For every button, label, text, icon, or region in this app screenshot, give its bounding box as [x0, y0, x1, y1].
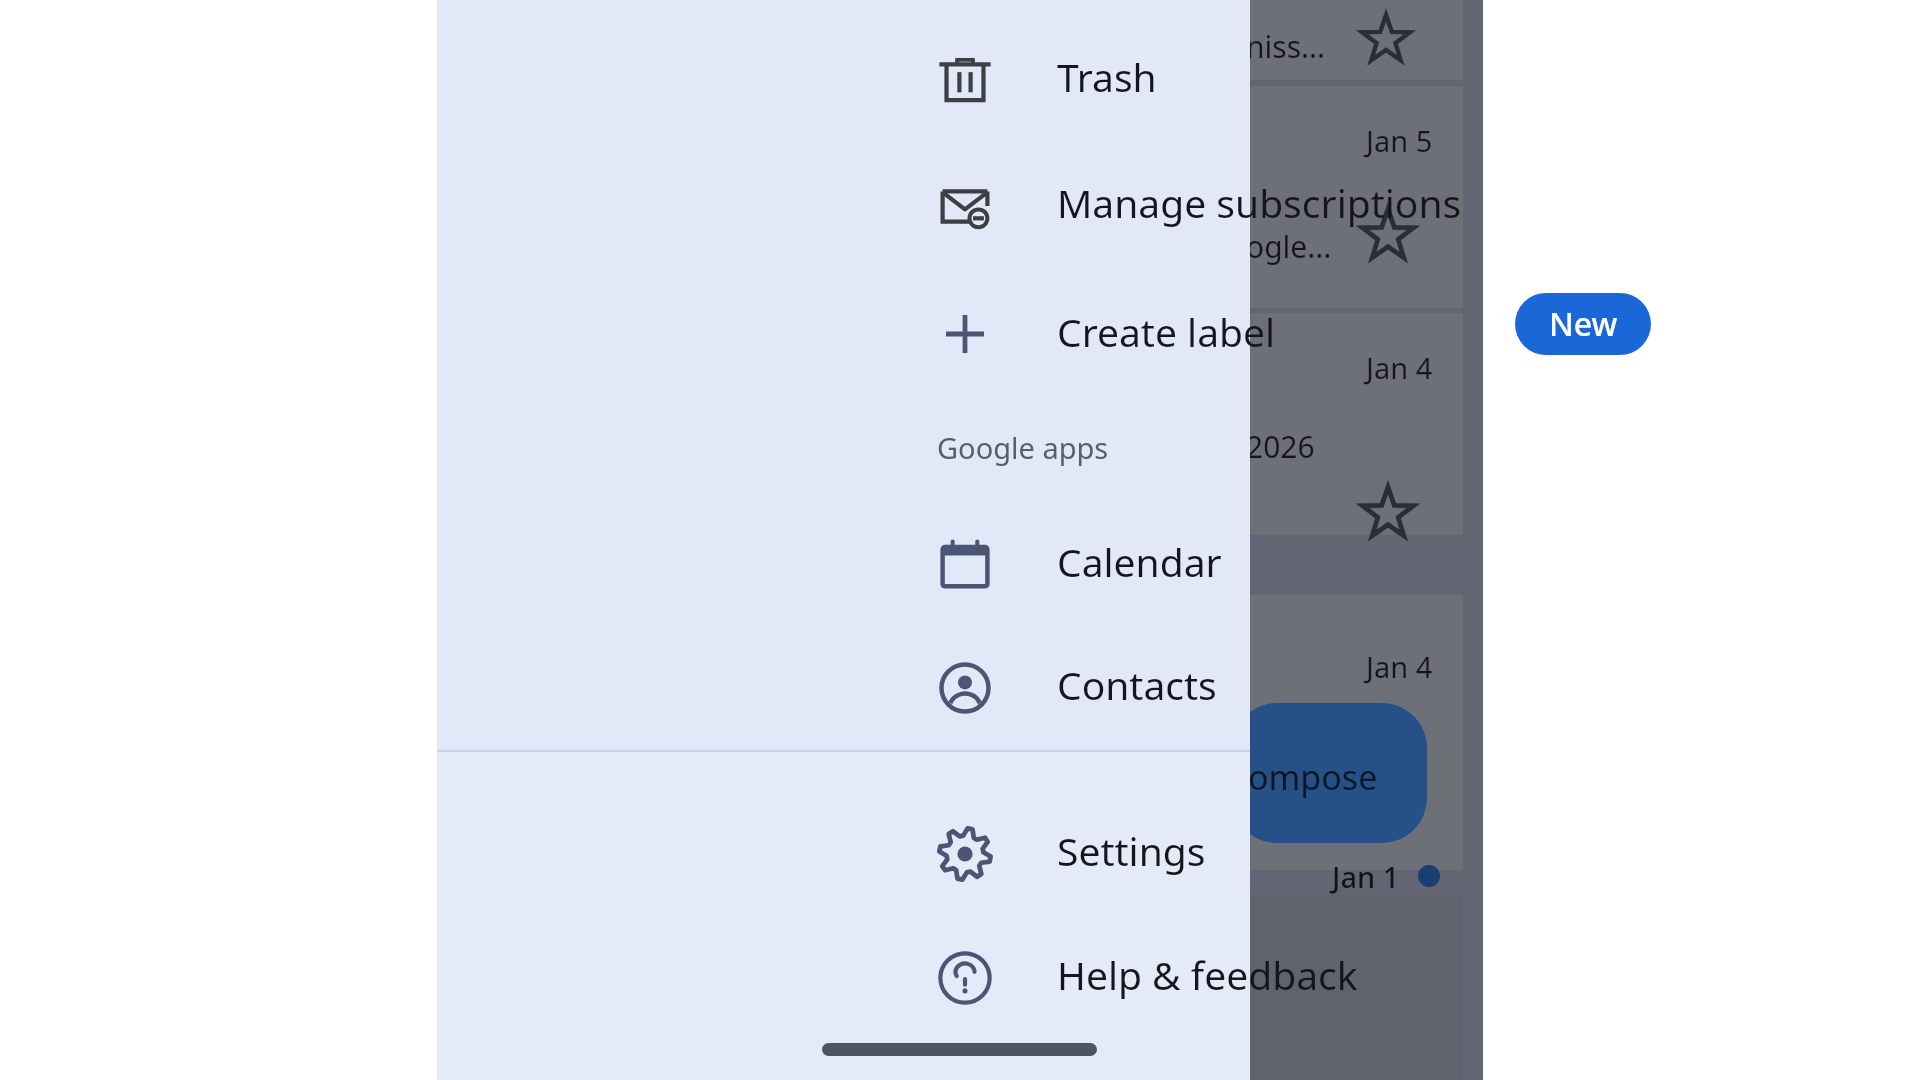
other: Contacts	[937, 660, 993, 716]
button[interactable]: ompose	[1232, 703, 1427, 843]
staticText: Jan 5	[1366, 121, 1433, 160]
other: Calendar	[937, 537, 993, 593]
staticText: Create label	[1057, 305, 1276, 358]
staticText: Manage subscriptions	[1057, 176, 1462, 229]
button[interactable]: Settings	[437, 804, 1250, 900]
other: Create label	[937, 306, 993, 362]
button[interactable]: Manage subscriptions	[437, 156, 1250, 252]
staticText: niss...	[1246, 26, 1326, 67]
staticText: Contacts	[1057, 658, 1217, 711]
staticText: Calendar	[1057, 535, 1222, 588]
staticText: Jan 4	[1366, 647, 1433, 686]
staticText: 2026	[1246, 426, 1315, 467]
other: Settings	[937, 826, 993, 882]
button[interactable]: Calendar	[437, 515, 1250, 611]
staticText: Jan 1	[1332, 857, 1400, 896]
button[interactable]: Trash	[437, 30, 1250, 126]
button[interactable]: New	[1515, 293, 1651, 355]
button[interactable]: Help and feedback	[437, 928, 1250, 1024]
staticText: Jan 4	[1366, 348, 1433, 387]
other: Trash	[937, 52, 993, 108]
staticText: Google apps	[937, 428, 1109, 467]
staticText: Help & feedback	[1057, 948, 1358, 1001]
other: Help and feedback	[937, 950, 993, 1006]
staticText: New	[1549, 302, 1618, 346]
staticText: Trash	[1057, 50, 1157, 103]
other: Manage subscriptions	[937, 178, 993, 234]
staticText: ogle...	[1246, 226, 1332, 267]
staticText: ompose	[1248, 754, 1378, 800]
staticText: Settings	[1057, 824, 1206, 877]
button[interactable]: Contacts	[437, 638, 1250, 734]
button[interactable]: Create label	[437, 283, 1250, 379]
